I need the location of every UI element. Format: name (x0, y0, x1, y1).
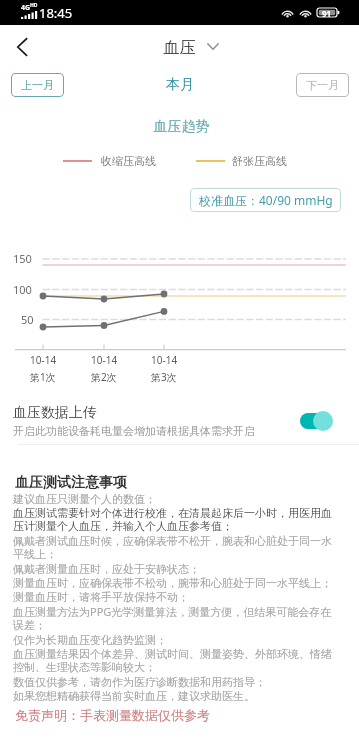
staticText: 下一月 (306, 78, 339, 92)
staticText: 免责声明：手表测量数据仅供参考 (15, 707, 210, 723)
staticText: 10-14 (91, 353, 118, 367)
staticText: 第1次 (30, 370, 56, 384)
staticText: 100 (13, 282, 32, 297)
button[interactable]: 本月 (156, 73, 204, 97)
staticText: 佩戴者测量血压时，应处于安静状态； (13, 562, 200, 576)
staticText: 第3次 (151, 370, 177, 384)
staticText: HD (30, 2, 38, 9)
button[interactable]: 血压 (0, 38, 359, 58)
staticText: 血压测试注意事项 (15, 474, 127, 492)
staticText: 测量血压时，请将手平放保持不动； (13, 590, 189, 604)
staticText: 血压测试需要针对个体进行校准，在清晨起床后一小时，用医用血压计测量个人血压，并输… (13, 506, 340, 534)
staticText: 18:45 (39, 4, 73, 22)
staticText: 数值仅供参考，请勿作为医疗诊断数据和用药指导； (13, 675, 266, 689)
staticText: 150 (13, 251, 32, 266)
staticText: 仅作为长期血压变化趋势监测； (13, 633, 167, 647)
staticText: 50 (21, 312, 34, 327)
staticText: 血压趋势 (2, 118, 359, 136)
staticText: 第2次 (91, 370, 117, 384)
button[interactable]: 下一月 (296, 73, 349, 97)
staticText: 开启此功能设备耗电量会增加请根据具体需求开启 (13, 424, 255, 438)
staticText: 4G (21, 3, 31, 13)
staticText: 如果您想精确获得当前实时血压，建议求助医生。 (13, 689, 255, 703)
staticText: 测量血压时，应确保表带不松动，腕带和心脏处于同一水平线上； (13, 576, 332, 590)
staticText: 收缩压高线 (101, 154, 156, 168)
button[interactable]: 血压数据上传 (0, 400, 359, 442)
button[interactable]: 上一月 (11, 73, 64, 97)
staticText: 校准血压：40/90 mmHg (199, 192, 333, 208)
button[interactable]: Select metric (207, 43, 219, 50)
button[interactable]: 校准血压：40/90 mmHg (190, 188, 341, 212)
staticText: 10-14 (151, 353, 178, 367)
staticText: 10-14 (30, 353, 57, 367)
staticText: 本月 (166, 76, 194, 94)
staticText: 上一月 (21, 78, 54, 92)
staticText: 血压测量方法为PPG光学测量算法，测量方便，但结果可能会存在误差； (13, 604, 340, 633)
staticText: 血压数据上传 (13, 404, 97, 422)
staticText: 舒张压高线 (232, 154, 287, 168)
staticText: 佩戴者测试血压时候，应确保表带不松开，腕表和心脏处于同一水平线上； (13, 534, 340, 562)
staticText: 血压测量结果因个体差异、测试时间、测量姿势、外部环境、情绪控制、生理状态等影响较… (13, 647, 340, 675)
button[interactable]: Back (6, 31, 38, 63)
staticText: 建议血压只测量个人的数值； (13, 492, 156, 506)
staticText: 91 (322, 8, 332, 19)
